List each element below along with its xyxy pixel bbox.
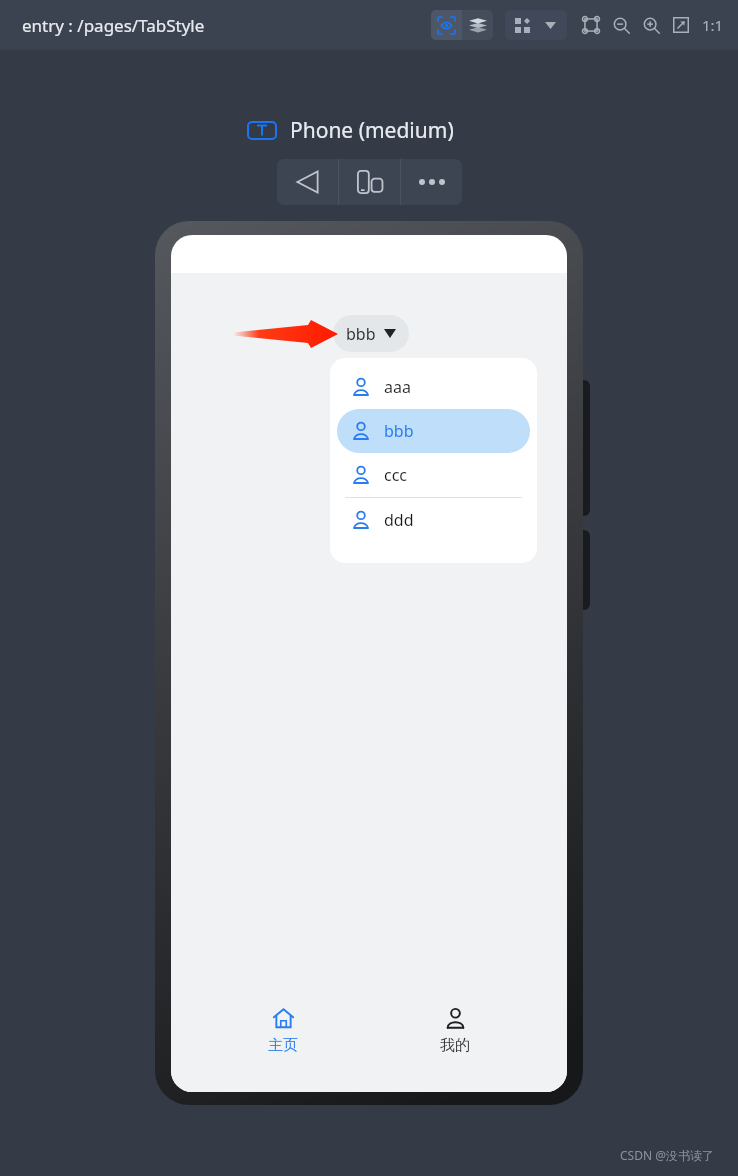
staticText: 主页: [268, 1036, 298, 1055]
staticText: Phone (medium): [290, 116, 454, 145]
button[interactable]: Fit: [666, 10, 696, 40]
button[interactable]: ddd: [351, 498, 530, 542]
button[interactable]: 主页: [223, 1007, 343, 1055]
button[interactable]: 1:1: [700, 15, 726, 35]
button[interactable]: Back: [277, 159, 338, 205]
staticText: ddd: [384, 509, 414, 531]
staticText: 1:1: [702, 15, 724, 35]
staticText: 我的: [440, 1036, 470, 1055]
button[interactable]: ccc: [351, 453, 530, 497]
button[interactable]: Layers: [462, 10, 493, 40]
button[interactable]: 我的: [395, 1007, 515, 1055]
button[interactable]: Choose device: [536, 11, 564, 39]
button[interactable]: More: [401, 159, 462, 205]
button[interactable]: aaa: [351, 365, 530, 409]
button[interactable]: bbb: [333, 315, 409, 352]
button[interactable]: Rotate: [339, 159, 400, 205]
staticText: entry : /pages/TabStyle: [22, 14, 205, 37]
staticText: aaa: [384, 376, 411, 398]
staticText: CSDN @没书读了: [620, 1147, 714, 1163]
staticText: bbb: [384, 420, 414, 442]
button[interactable]: bbb: [351, 409, 530, 453]
button[interactable]: Zoom out: [606, 10, 636, 40]
staticText: bbb: [346, 323, 376, 345]
staticText: ccc: [384, 464, 408, 486]
button[interactable]: Frame: [576, 10, 606, 40]
button[interactable]: Grid layout: [508, 11, 536, 39]
button[interactable]: Toggle preview: [431, 10, 462, 40]
button[interactable]: Zoom in: [636, 10, 666, 40]
